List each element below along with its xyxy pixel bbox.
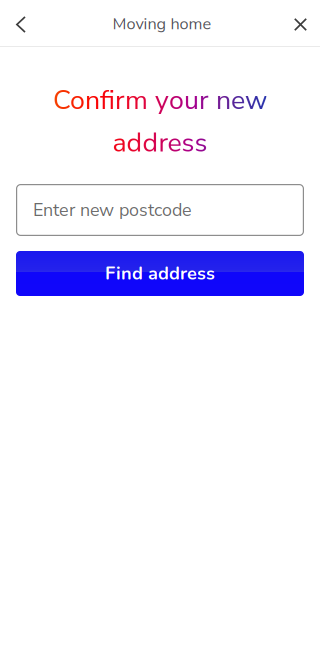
staticText: Enter new postcode bbox=[33, 198, 192, 222]
staticText: Moving home bbox=[112, 13, 211, 35]
staticText: Find address bbox=[105, 261, 215, 286]
button[interactable]: Find address bbox=[16, 251, 304, 296]
button[interactable]: Back bbox=[0, 0, 42, 46]
button[interactable]: Close bbox=[278, 0, 320, 46]
